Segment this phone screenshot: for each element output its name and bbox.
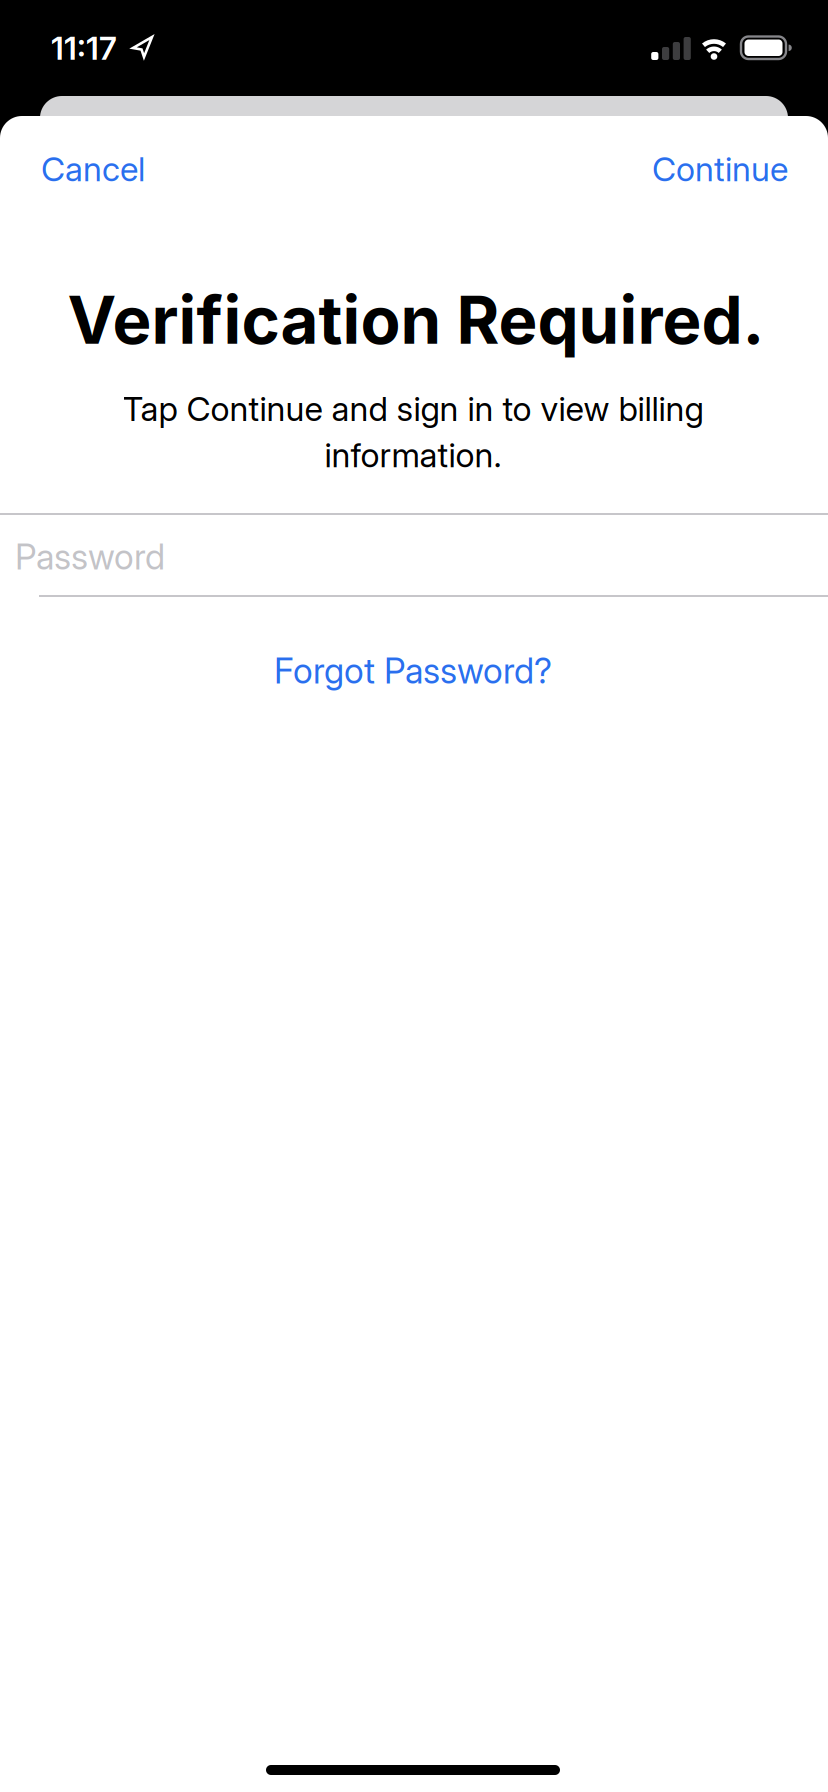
- staticText: information.: [324, 435, 501, 475]
- staticText: Forgot Password?: [274, 651, 552, 691]
- staticText: Verification Required.: [67, 281, 764, 359]
- button[interactable]: Cancel: [41, 149, 145, 189]
- staticText: Password: [15, 537, 165, 577]
- button[interactable]: Password: [0, 517, 828, 597]
- staticText: Tap Continue and sign in to view billing: [122, 389, 703, 428]
- staticText: Cancel: [41, 149, 145, 189]
- staticText: 11:17: [51, 29, 117, 67]
- button[interactable]: Forgot Password?: [274, 651, 552, 691]
- button[interactable]: Continue: [652, 149, 788, 189]
- staticText: Continue: [652, 149, 788, 189]
